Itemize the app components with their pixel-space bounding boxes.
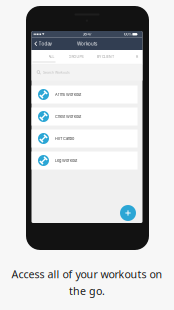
- staticText: Chest Workout: [55, 114, 81, 119]
- staticText: ALL: [48, 55, 54, 59]
- button[interactable]: HIIT Cardio: [31, 129, 137, 147]
- button[interactable]: Chest Workout: [31, 107, 137, 125]
- button[interactable]: Today: [31, 37, 56, 50]
- button[interactable]: GROUPS: [63, 50, 88, 63]
- staticText: the go.: [69, 284, 105, 298]
- staticText: Arms Workout: [55, 92, 81, 97]
- staticText: Access all of your workouts on: [11, 267, 162, 281]
- button[interactable]: Add workout: [120, 205, 136, 221]
- button[interactable]: ALL: [39, 50, 63, 63]
- staticText: BY CLIENT: [97, 55, 114, 59]
- staticText: GROUPS: [68, 55, 83, 59]
- staticText: Today: [39, 41, 53, 46]
- staticText: HIIT Cardio: [55, 136, 74, 141]
- button[interactable]: Leg Workout: [31, 151, 137, 169]
- staticText: 100%: [124, 32, 132, 36]
- staticText: Workouts: [77, 41, 97, 46]
- staticText: 08:47: [82, 32, 91, 36]
- staticText: Leg Workout: [55, 158, 77, 163]
- button[interactable]: BY CLIENT: [91, 50, 120, 63]
- staticText: Search Workouts: [43, 70, 70, 74]
- staticText: B: [136, 55, 138, 59]
- button[interactable]: Arms Workout: [31, 85, 137, 103]
